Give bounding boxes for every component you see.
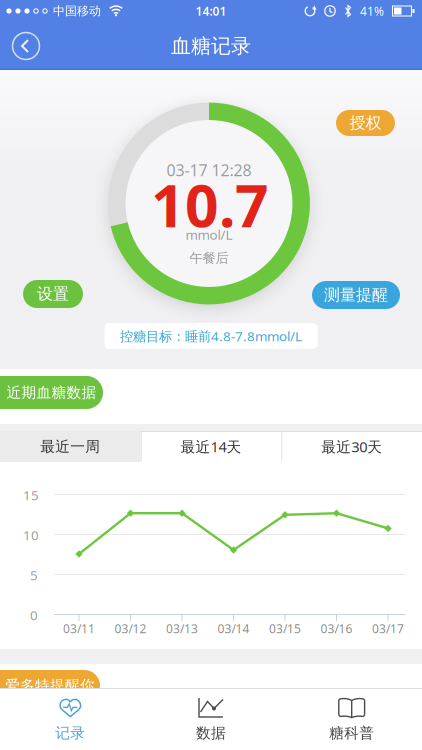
staticText: 血糖记录 (171, 34, 251, 58)
staticText: 03/13 (166, 620, 198, 636)
staticText: 10 (23, 526, 39, 544)
staticText: 记录 (55, 724, 85, 742)
staticText: 近期血糖数据 (6, 383, 96, 401)
staticText: 数据 (196, 724, 226, 742)
button[interactable]: 授权 (336, 110, 395, 136)
button[interactable]: 最近14天 (141, 431, 281, 462)
staticText: 午餐后 (189, 250, 228, 266)
staticText: 控糖目标：睡前4.8-7.8mmol/L (120, 327, 302, 345)
staticText: 5 (30, 566, 38, 584)
staticText: 最近14天 (180, 437, 241, 456)
staticText: 最近一周 (40, 437, 100, 455)
staticText: 03-17 12:28 (166, 159, 251, 181)
staticText: 03/15 (269, 620, 301, 636)
staticText: mmol/L (185, 226, 232, 243)
button[interactable]: 测量提醒 (312, 281, 400, 309)
staticText: 中国移动 (53, 4, 101, 18)
button[interactable]: Back (12, 32, 39, 59)
button[interactable]: 记录 (0, 689, 140, 750)
staticText: 授权 (349, 113, 381, 133)
staticText: 10.7 (151, 165, 269, 243)
staticText: 03/16 (320, 620, 352, 636)
button[interactable]: 糖科普 (282, 689, 422, 750)
staticText: 0 (30, 606, 38, 624)
staticText: 03/17 (372, 620, 404, 636)
staticText: 03/12 (114, 620, 146, 636)
staticText: 41% (360, 3, 384, 19)
staticText: 03/14 (217, 620, 249, 636)
staticText: 最近30天 (321, 437, 382, 456)
button[interactable]: 最近30天 (281, 431, 422, 462)
staticText: 糖科普 (329, 724, 374, 742)
button[interactable]: 设置 (23, 280, 83, 308)
staticText: 15 (23, 486, 39, 504)
button[interactable]: 最近一周 (0, 431, 141, 462)
staticText: 14:01 (195, 3, 226, 19)
staticText: 设置 (37, 284, 69, 304)
staticText: 测量提醒 (324, 285, 388, 305)
staticText: 爱多特提醒你 (5, 676, 95, 694)
staticText: 03/11 (63, 620, 95, 636)
button[interactable]: 数据 (141, 689, 281, 750)
